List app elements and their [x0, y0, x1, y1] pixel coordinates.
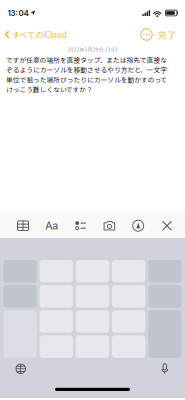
staticText: けっこう難しくないですか？	[6, 84, 93, 94]
button[interactable]: Dictation	[157, 360, 173, 378]
staticText: 完了	[158, 28, 176, 41]
staticText: すべてのiCloud	[12, 29, 67, 40]
staticText: 13:04	[7, 8, 28, 18]
button[interactable]: すべてのiCloud	[0, 27, 67, 42]
staticText: 2022年3月29日 13:03	[67, 46, 117, 53]
staticText: ぞるようにカーソルを移動させるやり方だと、一文字	[6, 65, 167, 74]
staticText: ですが任意の場所を直接タップ、または指先で直接な	[6, 55, 167, 65]
button[interactable]: Format	[40, 216, 63, 236]
button[interactable]: Next keyboard	[12, 360, 29, 377]
button[interactable]: Table	[11, 216, 35, 236]
button[interactable]: Checklist	[69, 216, 92, 236]
button[interactable]: 完了	[154, 26, 180, 43]
button[interactable]: More	[139, 27, 154, 42]
button[interactable]: Close	[155, 216, 179, 236]
staticText: 単位で狙った場所ぴったりにカーソルを動かすのって	[6, 75, 167, 84]
staticText: Aa	[45, 219, 58, 232]
button[interactable]: Markup	[126, 216, 150, 236]
button[interactable]: Camera	[98, 216, 121, 236]
